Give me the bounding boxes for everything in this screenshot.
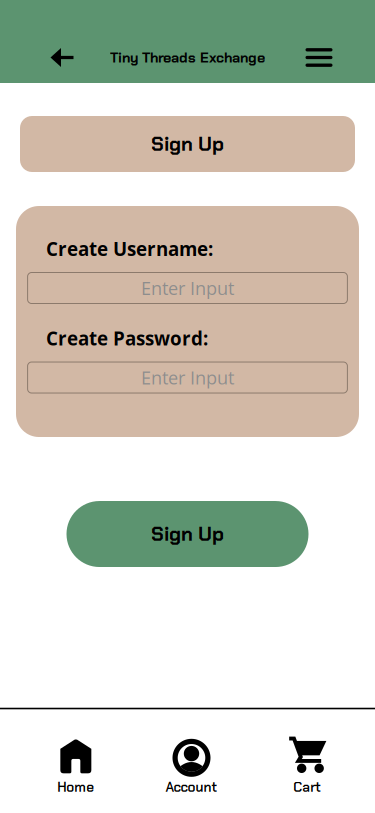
- button[interactable]: Back: [36, 37, 87, 78]
- button[interactable]: Account: [165, 734, 217, 796]
- staticText: Sign Up: [151, 521, 224, 547]
- staticText: Home: [57, 778, 94, 796]
- staticText: Cart: [293, 778, 321, 796]
- button[interactable]: Cart: [286, 734, 328, 796]
- staticText: Enter Input: [141, 365, 234, 390]
- staticText: Enter Input: [141, 276, 234, 300]
- button[interactable]: Sign Up: [66, 501, 308, 567]
- button[interactable]: Menu: [291, 37, 346, 78]
- staticText: Sign Up: [151, 131, 224, 157]
- staticText: Tiny Threads Exchange: [110, 48, 265, 67]
- staticText: Create Password:: [46, 325, 208, 351]
- staticText: Account: [165, 778, 217, 796]
- button[interactable]: Home: [55, 734, 97, 796]
- staticText: Create Username:: [46, 236, 213, 261]
